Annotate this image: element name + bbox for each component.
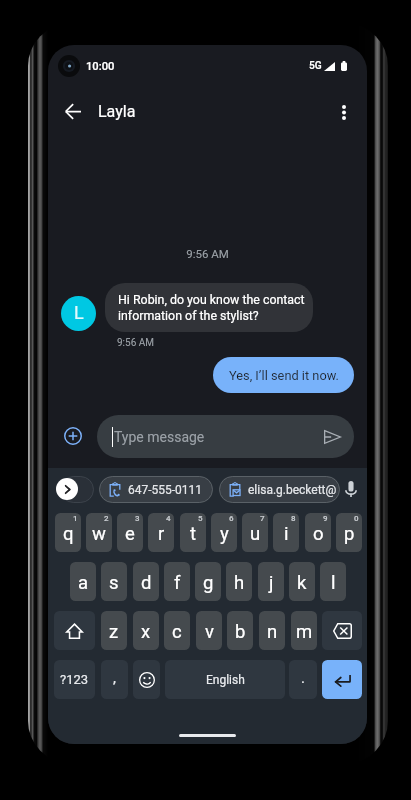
staticText: 5 <box>198 514 203 523</box>
button[interactable]: a <box>70 562 96 601</box>
button[interactable]: p <box>336 513 362 552</box>
button[interactable]: w <box>86 513 112 552</box>
button[interactable]: t <box>180 513 206 552</box>
staticText: n <box>267 621 278 643</box>
staticText: l <box>331 572 336 594</box>
staticText: 9:56 AM <box>48 247 367 260</box>
button[interactable]: More suggestions <box>56 478 78 500</box>
staticText: h <box>234 572 245 594</box>
button[interactable]: ?123 <box>54 660 95 699</box>
staticText: d <box>141 572 152 594</box>
button[interactable]: u <box>242 513 268 552</box>
staticText: Yes, I’ll send it now. <box>229 368 339 383</box>
staticText: r <box>158 523 165 545</box>
staticText: L <box>74 302 84 323</box>
staticText: , <box>113 669 116 687</box>
button[interactable]: d <box>133 562 159 601</box>
staticText: Hi Robin, do you know the contact inform… <box>118 292 305 323</box>
staticText: t <box>190 523 197 545</box>
staticText: 1 <box>73 514 78 523</box>
staticText: k <box>297 572 307 594</box>
staticText: w <box>92 523 106 545</box>
button[interactable]: o <box>305 513 331 552</box>
button[interactable]: j <box>258 562 284 601</box>
staticText: Type message <box>114 429 205 445</box>
button[interactable]: Back <box>53 91 93 131</box>
staticText: 5G <box>309 60 322 72</box>
button[interactable]: More options <box>324 92 364 132</box>
button[interactable]: . <box>289 660 317 699</box>
button[interactable]: g <box>195 562 221 601</box>
button[interactable]: Backspace <box>322 611 362 650</box>
staticText: g <box>203 572 214 594</box>
staticText: 647-555-0111 <box>128 483 203 497</box>
button[interactable]: m <box>291 611 317 650</box>
button[interactable]: x <box>133 611 159 650</box>
staticText: . <box>301 669 305 687</box>
button[interactable]: Enter <box>322 660 362 699</box>
button[interactable]: Hi Robin, do you know the contact inform… <box>105 283 313 332</box>
button[interactable]: s <box>101 562 127 601</box>
button[interactable]: l <box>320 562 346 601</box>
staticText: 7 <box>260 514 265 523</box>
button[interactable]: elisa.g.beckett@ <box>219 476 340 503</box>
button[interactable]: Yes, I’ll send it now. <box>213 357 354 393</box>
staticText: z <box>109 621 119 643</box>
staticText: p <box>344 523 355 545</box>
staticText: 2 <box>104 514 109 523</box>
button[interactable]: z <box>101 611 127 650</box>
button[interactable]: f <box>164 562 190 601</box>
staticText: o <box>313 523 324 545</box>
staticText: a <box>78 572 89 594</box>
button[interactable]: i <box>273 513 299 552</box>
staticText: j <box>269 572 274 594</box>
staticText: ?123 <box>60 672 89 687</box>
staticText: 6 <box>229 514 234 523</box>
staticText: s <box>109 572 119 594</box>
button[interactable]: 647-555-0111 <box>99 476 213 503</box>
button[interactable]: English <box>165 660 285 699</box>
staticText: 3 <box>135 514 140 523</box>
staticText: 8 <box>291 514 296 523</box>
staticText: q <box>63 523 74 545</box>
staticText: 9:56 AM <box>117 337 155 349</box>
button[interactable]: Voice input <box>341 477 361 501</box>
staticText: 10:00 <box>86 60 115 73</box>
button[interactable]: Add attachment <box>56 419 89 452</box>
staticText: u <box>250 523 261 545</box>
button[interactable]: b <box>227 611 253 650</box>
staticText: m <box>296 621 313 643</box>
staticText: c <box>172 621 182 643</box>
button[interactable]: e <box>117 513 143 552</box>
staticText: English <box>206 673 245 687</box>
staticText: i <box>284 523 289 545</box>
button[interactable]: h <box>226 562 252 601</box>
button[interactable]: Emoji <box>133 660 160 699</box>
button[interactable]: q <box>55 513 81 552</box>
staticText: b <box>235 621 246 643</box>
staticText: 4 <box>166 514 171 523</box>
button[interactable]: Type message <box>97 415 354 458</box>
button[interactable]: k <box>289 562 315 601</box>
button[interactable]: r <box>148 513 174 552</box>
staticText: f <box>174 572 181 594</box>
staticText: e <box>125 523 135 545</box>
button[interactable]: n <box>259 611 285 650</box>
staticText: x <box>141 621 151 643</box>
staticText: 0 <box>354 514 359 523</box>
button[interactable]: Shift <box>54 611 95 650</box>
staticText: 9 <box>323 514 328 523</box>
button[interactable]: y <box>211 513 237 552</box>
button[interactable]: v <box>196 611 222 650</box>
button[interactable]: , <box>101 660 128 699</box>
staticText: elisa.g.beckett@ <box>248 483 337 497</box>
button[interactable]: c <box>164 611 190 650</box>
staticText: v <box>205 621 214 643</box>
staticText: y <box>220 523 229 545</box>
staticText: Layla <box>98 102 136 121</box>
